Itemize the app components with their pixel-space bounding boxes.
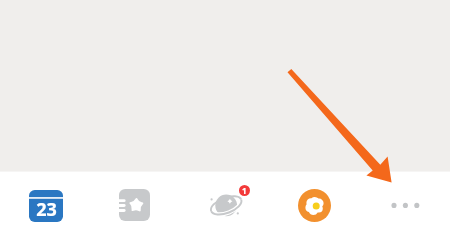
button[interactable]: Lists (90, 172, 180, 239)
button[interactable]: Discover (180, 172, 272, 239)
button[interactable]: Calendar (0, 172, 90, 239)
button[interactable]: Recipes (272, 172, 360, 239)
staticText: 23 (36, 197, 57, 222)
button[interactable]: More (360, 172, 450, 239)
staticText: 1 (242, 185, 247, 196)
